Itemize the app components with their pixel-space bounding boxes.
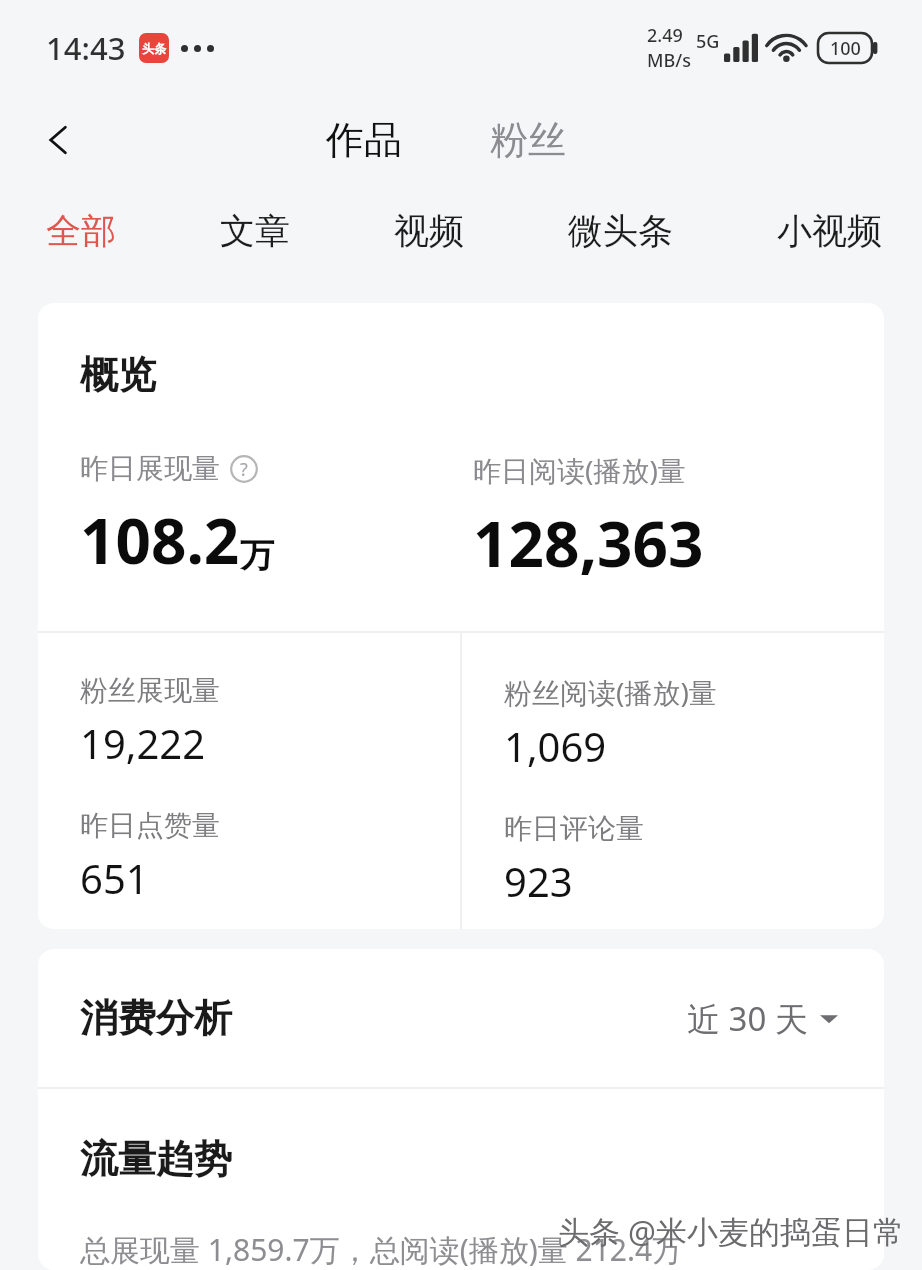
staticText: 全部 — [46, 209, 116, 253]
staticText: 1,069 — [504, 719, 607, 773]
staticText: 651 — [80, 851, 149, 905]
staticText: 作品 — [326, 116, 402, 164]
staticText: 923 — [504, 854, 573, 908]
button[interactable]: 粉丝 — [482, 110, 574, 170]
staticText: ? — [240, 457, 248, 482]
staticText: 5G — [696, 29, 720, 54]
button[interactable]: 文章 — [214, 201, 296, 261]
staticText: 近 30 天 — [687, 996, 808, 1041]
staticText: 消费分析 — [80, 994, 232, 1042]
staticText: 昨日展现量 — [80, 451, 220, 486]
staticText: 粉丝 — [490, 116, 566, 164]
staticText: 100 — [830, 36, 861, 61]
staticText: 流量趋势 — [80, 1135, 232, 1183]
button[interactable]: 微头条 — [562, 201, 679, 261]
staticText: 19,222 — [80, 716, 206, 770]
staticText: 总展现量 1,859.7万，总阅读(播放)量 212.4万 — [80, 1229, 683, 1270]
staticText: 昨日评论量 — [504, 811, 644, 846]
button[interactable]: 作品 — [318, 110, 410, 170]
staticText: 昨日阅读(播放)量 — [473, 451, 686, 489]
staticText: 14:43 — [46, 27, 126, 69]
staticText: 文章 — [220, 209, 290, 253]
staticText: 头条 — [142, 41, 166, 56]
staticText: 视频 — [394, 209, 464, 253]
staticText: 128,363 — [473, 501, 704, 585]
button[interactable]: Info — [230, 455, 258, 483]
staticText: 概览 — [80, 351, 156, 399]
button[interactable]: Back — [28, 109, 90, 171]
button[interactable]: 小视频 — [771, 201, 888, 261]
staticText: 粉丝展现量 — [80, 673, 220, 708]
staticText: 微头条 — [568, 209, 673, 253]
button[interactable]: 全部 — [40, 201, 122, 261]
staticText: 108.2 — [80, 498, 240, 582]
button[interactable]: 近 30 天 — [683, 990, 842, 1047]
staticText: MB/s — [647, 48, 691, 73]
staticText: 粉丝阅读(播放)量 — [504, 673, 717, 711]
staticText: 头条 @米小麦的捣蛋日常 — [558, 1210, 904, 1252]
staticText: 万 — [240, 534, 274, 577]
staticText: 昨日点赞量 — [80, 808, 220, 843]
button[interactable]: 视频 — [388, 201, 470, 261]
staticText: 2.49 — [647, 23, 683, 48]
staticText: 小视频 — [777, 209, 882, 253]
